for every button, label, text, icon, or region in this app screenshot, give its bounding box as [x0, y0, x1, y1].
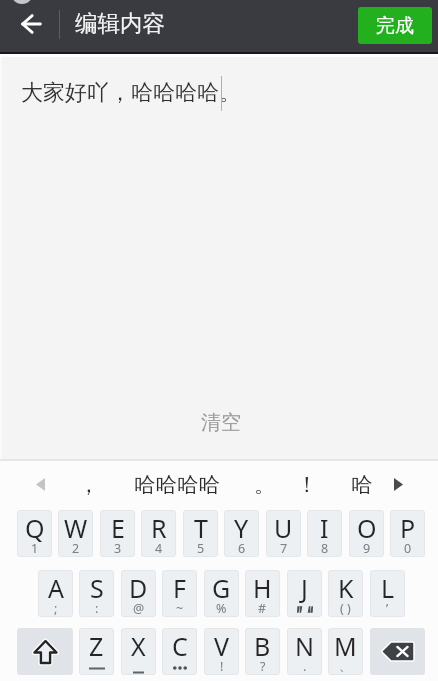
- staticText: %: [216, 600, 227, 617]
- staticText: G: [212, 571, 231, 605]
- staticText: 5: [197, 540, 205, 557]
- button[interactable]: T: [183, 510, 218, 557]
- button[interactable]: 清空: [187, 405, 255, 440]
- staticText: ( ): [340, 600, 351, 617]
- staticText: E: [111, 511, 125, 545]
- staticText: 清空: [201, 410, 241, 435]
- button[interactable]: F: [162, 570, 197, 617]
- button[interactable]: W: [58, 510, 93, 557]
- staticText: ’: [386, 600, 389, 617]
- staticText: 哈哈哈哈: [134, 471, 220, 498]
- button[interactable]: B: [245, 628, 280, 675]
- staticText: 8: [321, 540, 329, 557]
- staticText: ?: [260, 658, 266, 675]
- button[interactable]: A: [38, 570, 73, 617]
- staticText: 编辑内容: [75, 9, 165, 37]
- staticText: ;: [54, 600, 58, 617]
- staticText: O: [357, 511, 377, 545]
- staticText: U: [274, 511, 293, 545]
- button[interactable]: 完成: [358, 7, 432, 44]
- staticText: X: [131, 629, 146, 663]
- staticText: .: [303, 658, 307, 675]
- staticText: P: [400, 511, 416, 545]
- button[interactable]: Next page: [386, 472, 410, 496]
- staticText: T: [194, 511, 208, 545]
- staticText: 。: [254, 471, 276, 498]
- button[interactable]: G: [204, 570, 239, 617]
- staticText: 2: [72, 540, 80, 557]
- staticText: 完成: [376, 14, 414, 38]
- button[interactable]: R: [141, 510, 176, 557]
- button[interactable]: M: [328, 628, 363, 675]
- staticText: ~: [176, 600, 184, 617]
- staticText: Z: [89, 629, 104, 663]
- staticText: A: [48, 571, 64, 605]
- button[interactable]: ！: [290, 467, 324, 502]
- staticText: #: [258, 600, 267, 617]
- staticText: C: [172, 629, 188, 663]
- staticText: 、: [339, 658, 352, 674]
- button[interactable]: O: [349, 510, 384, 557]
- button[interactable]: Back: [9, 2, 53, 46]
- button[interactable]: 哈: [345, 467, 379, 502]
- staticText: 哈: [351, 471, 373, 498]
- staticText: J: [301, 571, 308, 605]
- staticText: 0: [404, 540, 412, 557]
- staticText: B: [254, 629, 271, 663]
- staticText: !: [220, 658, 224, 675]
- button[interactable]: D: [121, 570, 156, 617]
- staticText: ！: [296, 471, 318, 498]
- button[interactable]: Shift: [17, 628, 73, 675]
- button[interactable]: C: [162, 628, 197, 675]
- staticText: H: [253, 571, 272, 605]
- button[interactable]: ，: [72, 467, 106, 502]
- button[interactable]: L: [370, 570, 405, 617]
- button[interactable]: I: [307, 510, 342, 557]
- button[interactable]: J: [287, 570, 322, 617]
- staticText: D: [129, 571, 148, 605]
- button[interactable]: S: [79, 570, 114, 617]
- staticText: V: [214, 629, 230, 663]
- staticText: 9: [363, 540, 371, 557]
- staticText: N: [295, 629, 315, 663]
- staticText: 3: [114, 540, 122, 557]
- button[interactable]: Q: [17, 510, 52, 557]
- button[interactable]: Z: [79, 628, 114, 675]
- button[interactable]: X: [121, 628, 156, 675]
- staticText: W: [64, 511, 88, 545]
- staticText: @: [133, 600, 145, 617]
- staticText: 1: [31, 540, 39, 557]
- staticText: :: [95, 600, 99, 617]
- staticText: M: [334, 629, 357, 663]
- staticText: F: [173, 571, 186, 605]
- button[interactable]: H: [245, 570, 280, 617]
- button[interactable]: V: [204, 628, 239, 675]
- staticText: 6: [238, 540, 246, 557]
- staticText: S: [90, 571, 104, 605]
- button[interactable]: U: [266, 510, 301, 557]
- button[interactable]: K: [328, 570, 363, 617]
- button[interactable]: P: [390, 510, 425, 557]
- staticText: 大家好吖，哈哈哈哈。: [21, 79, 241, 107]
- button[interactable]: 哈哈哈哈: [128, 467, 226, 502]
- staticText: L: [381, 571, 395, 605]
- button[interactable]: Backspace: [370, 628, 425, 675]
- staticText: R: [151, 511, 167, 545]
- button[interactable]: 。: [248, 467, 282, 502]
- button[interactable]: E: [100, 510, 135, 557]
- staticText: 7: [280, 540, 288, 557]
- staticText: K: [338, 571, 354, 605]
- staticText: Q: [25, 511, 45, 545]
- button[interactable]: N: [287, 628, 322, 675]
- staticText: Y: [234, 511, 249, 545]
- staticText: 4: [155, 540, 163, 557]
- button[interactable]: Y: [224, 510, 259, 557]
- staticText: I: [320, 511, 329, 545]
- button[interactable]: Previous page: [28, 472, 52, 496]
- staticText: ，: [78, 471, 100, 498]
